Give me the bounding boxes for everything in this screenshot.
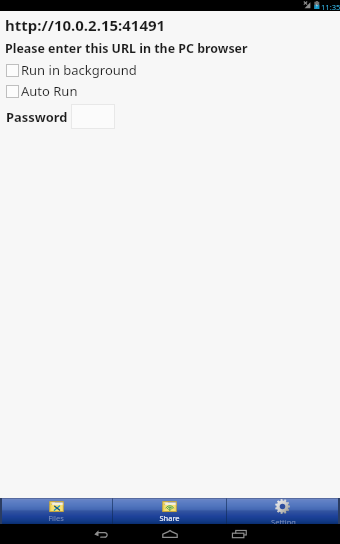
button[interactable]: Home	[140, 524, 200, 544]
button[interactable]: Setting	[227, 498, 340, 524]
button[interactable]: Run in background	[6, 61, 137, 79]
staticText: Password	[6, 108, 68, 126]
staticText: Run in background	[21, 61, 137, 79]
staticText: Auto Run	[21, 82, 78, 100]
staticText: Files	[48, 513, 64, 523]
staticText: http://10.0.2.15:41491	[5, 15, 166, 35]
button[interactable]: Auto Run	[6, 82, 78, 100]
button[interactable]: Files	[0, 498, 112, 524]
staticText: Share	[159, 513, 180, 523]
staticText: Please enter this URL in the PC browser	[5, 40, 248, 57]
button[interactable]: Back	[71, 524, 131, 544]
button[interactable]: Recent apps	[209, 524, 269, 544]
staticText: Setting	[271, 517, 296, 524]
staticText: 11:35	[321, 2, 340, 12]
button[interactable]: Share	[113, 498, 226, 524]
button[interactable]	[71, 104, 115, 129]
